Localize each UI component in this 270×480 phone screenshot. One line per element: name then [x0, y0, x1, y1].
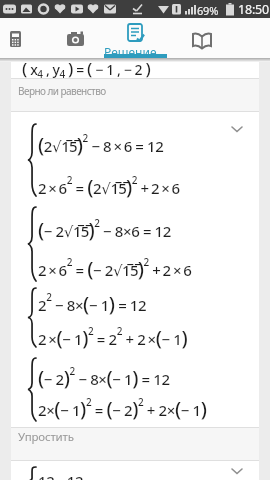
staticText: 2 ×(− 1)2 = 22 + 2 ×(− 1)	[38, 324, 188, 351]
staticText: 69%	[197, 3, 219, 18]
staticText: 2×(− 1)2 = (− 2)2 + 2×(− 1)	[38, 395, 207, 422]
button[interactable]	[226, 119, 248, 139]
button[interactable]: Решение	[104, 18, 167, 62]
button[interactable]	[0, 18, 40, 58]
button[interactable]	[11, 62, 259, 79]
staticText: Упростить	[18, 429, 74, 445]
staticText: 18:50	[238, 1, 269, 18]
staticText: Решение	[104, 44, 157, 60]
button[interactable]	[11, 461, 259, 480]
staticText: 2 × 62 = (2√1̅5̅)2 + 2 × 6	[38, 173, 180, 200]
staticText: 12 = 12	[38, 471, 84, 480]
button[interactable]	[182, 18, 222, 58]
staticText: 22 − 8×(− 1) = 12	[38, 290, 147, 317]
staticText: ( x4 , y4 ) = ( − 1 , − 2 )	[22, 57, 151, 80]
button[interactable]	[55, 18, 99, 58]
staticText: 2 × 62 = (− 2√1̅5̅)2 + 2 × 6	[38, 255, 192, 282]
button[interactable]	[226, 461, 248, 480]
button[interactable]	[11, 112, 259, 428]
staticText: (− 2√1̅5̅)2 − 8×6 = 12	[38, 216, 171, 243]
staticText: Верно ли равенство	[18, 84, 106, 98]
staticText: (2√1̅5̅)2 − 8 × 6 = 12	[38, 131, 164, 158]
staticText: (− 2)2 − 8×(− 1) = 12	[38, 364, 170, 391]
